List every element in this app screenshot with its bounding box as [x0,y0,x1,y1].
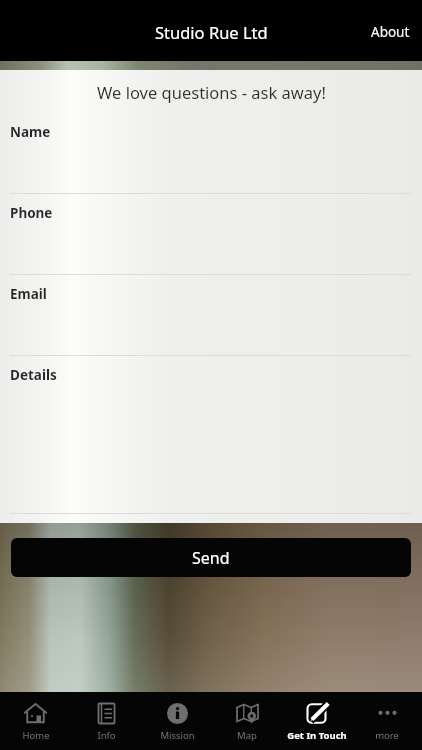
button[interactable]: Send [11,538,411,577]
button[interactable]: Map [212,692,282,750]
button[interactable]: Email [0,275,422,355]
button[interactable]: Mission [142,692,212,750]
button[interactable]: Name [0,113,422,193]
staticText: Phone [10,204,53,222]
staticText: Details [10,366,57,384]
staticText: Get In Touch [287,729,347,742]
staticText: About [371,23,410,41]
staticText: Map [237,729,257,742]
staticText: We love questions - ask away! [97,81,326,103]
button[interactable]: Home [0,692,71,750]
staticText: Send [192,547,230,569]
staticText: more [375,729,399,742]
button[interactable]: Info [71,692,142,750]
button[interactable]: Details [0,356,422,436]
button[interactable]: Phone [0,194,422,274]
staticText: Name [10,123,51,141]
staticText: Info [97,729,116,742]
button[interactable]: About [359,15,422,49]
staticText: Email [10,285,47,303]
staticText: Studio Rue Ltd [155,21,268,43]
button[interactable]: more [352,692,422,750]
staticText: Home [22,729,50,742]
button[interactable]: Get In Touch [282,692,352,750]
staticText: Mission [160,729,195,742]
